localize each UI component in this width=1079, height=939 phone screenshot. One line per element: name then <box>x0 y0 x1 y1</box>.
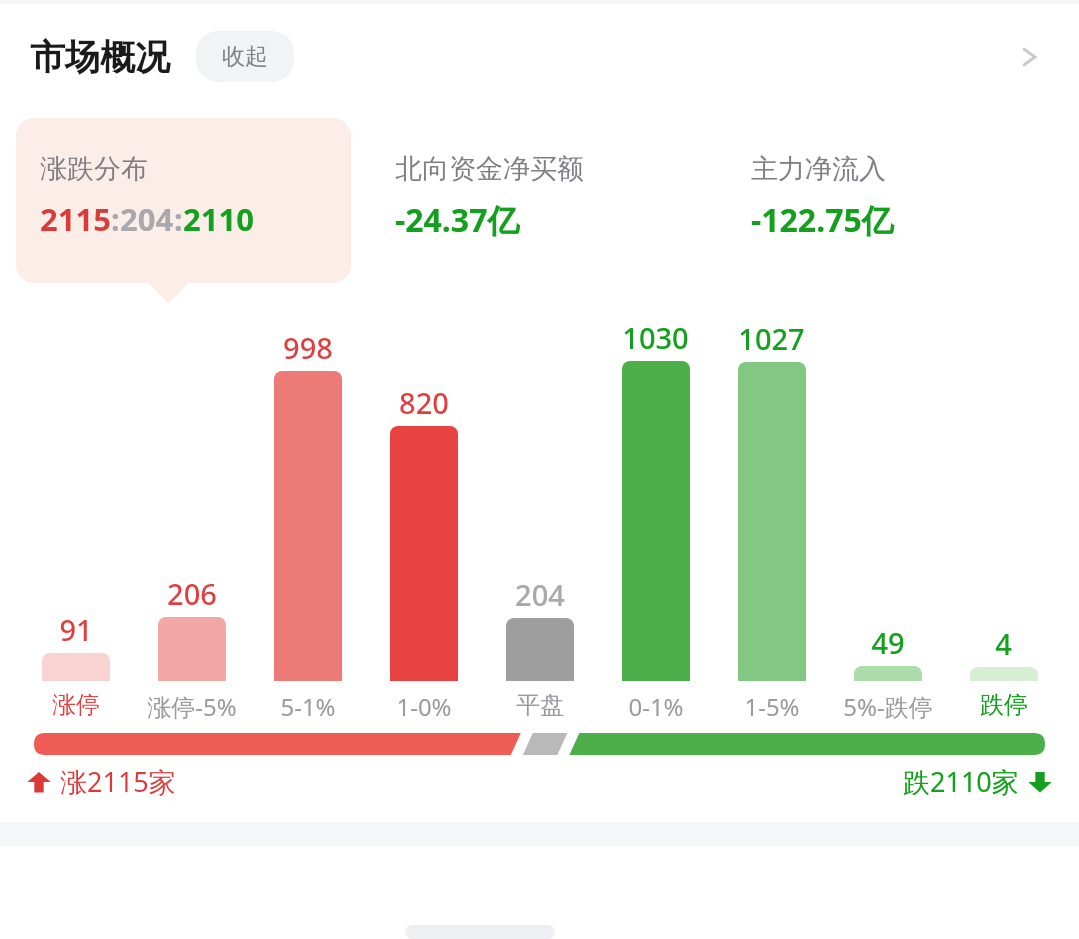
staticText: 市场概况 <box>30 35 170 79</box>
staticText: 5%-跌停 <box>843 690 933 723</box>
button[interactable]: 1030 <box>600 317 711 723</box>
staticText: 主力净流入 <box>751 152 886 186</box>
button[interactable]: 206 <box>136 317 247 723</box>
staticText: 998 <box>283 328 333 367</box>
staticText: 204 <box>515 575 565 614</box>
staticText: 跌2110家 <box>903 763 1019 800</box>
staticText: 平盘 <box>516 690 564 720</box>
staticText: 2110 <box>183 198 254 240</box>
staticText: 5-1% <box>280 690 336 723</box>
staticText: 1-0% <box>396 690 452 723</box>
staticText: -122.75亿 <box>751 198 894 242</box>
button[interactable]: 820 <box>368 317 479 723</box>
button[interactable]: 4 <box>948 317 1059 720</box>
staticText: 北向资金净买额 <box>395 152 584 186</box>
button[interactable]: 91 <box>20 317 131 720</box>
button[interactable]: 204 <box>484 317 595 720</box>
staticText: 204 <box>120 198 174 240</box>
staticText: 涨2115家 <box>60 763 176 800</box>
staticText: 2115 <box>40 198 111 240</box>
staticText: 涨停 <box>52 690 100 720</box>
staticText: 涨跌分布 <box>40 152 148 186</box>
staticText: 206 <box>167 574 217 613</box>
button[interactable]: 主力净流入 <box>729 118 1063 283</box>
staticText: 49 <box>871 623 905 662</box>
button[interactable]: 49 <box>832 317 943 723</box>
staticText: 4 <box>995 624 1012 663</box>
staticText: 0-1% <box>628 690 684 723</box>
staticText: 跌停 <box>980 690 1028 720</box>
staticText: 1027 <box>738 319 805 358</box>
staticText: 1-5% <box>744 690 800 723</box>
staticText: 91 <box>59 610 93 649</box>
button[interactable]: 查看更多 <box>1003 31 1055 83</box>
staticText: 收起 <box>222 42 268 71</box>
button[interactable]: 998 <box>252 317 363 723</box>
button[interactable]: 收起 <box>196 31 294 82</box>
staticText: 涨停-5% <box>147 690 237 723</box>
staticText: 820 <box>399 383 449 422</box>
button[interactable]: 涨跌分布 <box>16 118 351 283</box>
staticText: : <box>111 198 120 240</box>
staticText: -24.37亿 <box>395 198 520 242</box>
staticText: 1030 <box>622 318 689 357</box>
staticText: : <box>174 198 183 240</box>
button[interactable]: 北向资金净买额 <box>373 118 707 283</box>
button[interactable]: 1027 <box>716 317 827 723</box>
